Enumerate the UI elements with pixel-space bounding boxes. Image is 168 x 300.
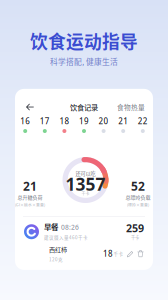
staticText: 20 xyxy=(99,116,109,126)
staticText: 16 xyxy=(20,116,30,126)
staticText: 1357 xyxy=(65,172,105,195)
button[interactable]: Back xyxy=(23,100,37,114)
staticText: (嘌呤×重量) xyxy=(127,202,149,207)
staticText: 千卡 xyxy=(131,234,139,240)
staticText: 科学搭配, 健康生活 xyxy=(50,56,118,67)
button[interactable]: 21 xyxy=(116,117,130,133)
button[interactable]: 22 xyxy=(136,117,150,133)
button[interactable]: 西红柿 xyxy=(24,245,144,263)
button[interactable]: 早餐 xyxy=(24,223,144,241)
staticText: 总升糖负荷 xyxy=(17,193,42,201)
staticText: 19 xyxy=(79,116,89,126)
staticText: 饮食记录 xyxy=(70,102,98,112)
staticText: 饮食运动指导 xyxy=(30,28,138,54)
staticText: 18 xyxy=(103,248,113,259)
staticText: 建议摄入量460千卡 xyxy=(44,234,88,240)
button[interactable]: 17 xyxy=(38,117,52,133)
staticText: 52 xyxy=(131,178,145,194)
staticText: 还可以吃 xyxy=(75,170,95,177)
staticText: 西红柿 xyxy=(49,245,67,254)
staticText: 千卡 xyxy=(113,250,123,257)
button[interactable]: 16 xyxy=(18,117,32,133)
staticText: (GI×碳水×重量) xyxy=(15,202,45,207)
staticText: 总嘌呤负载 xyxy=(125,193,150,201)
staticText: 22 xyxy=(138,116,148,126)
button[interactable]: 食物热量 xyxy=(117,100,145,114)
button[interactable]: 20 xyxy=(97,117,111,133)
staticText: 21 xyxy=(118,116,128,126)
staticText: 17 xyxy=(40,116,50,126)
staticText: 08:26 xyxy=(61,223,79,232)
staticText: 食物热量 xyxy=(117,102,145,112)
button[interactable]: 18 xyxy=(57,117,71,133)
staticText: 千卡 xyxy=(81,191,89,196)
staticText: 18 xyxy=(59,116,69,126)
staticText: 120克 xyxy=(49,256,63,262)
staticText: 21 xyxy=(23,178,37,194)
staticText: 259 xyxy=(126,221,144,235)
button[interactable]: 19 xyxy=(77,117,91,133)
staticText: 早餐 xyxy=(44,222,58,233)
